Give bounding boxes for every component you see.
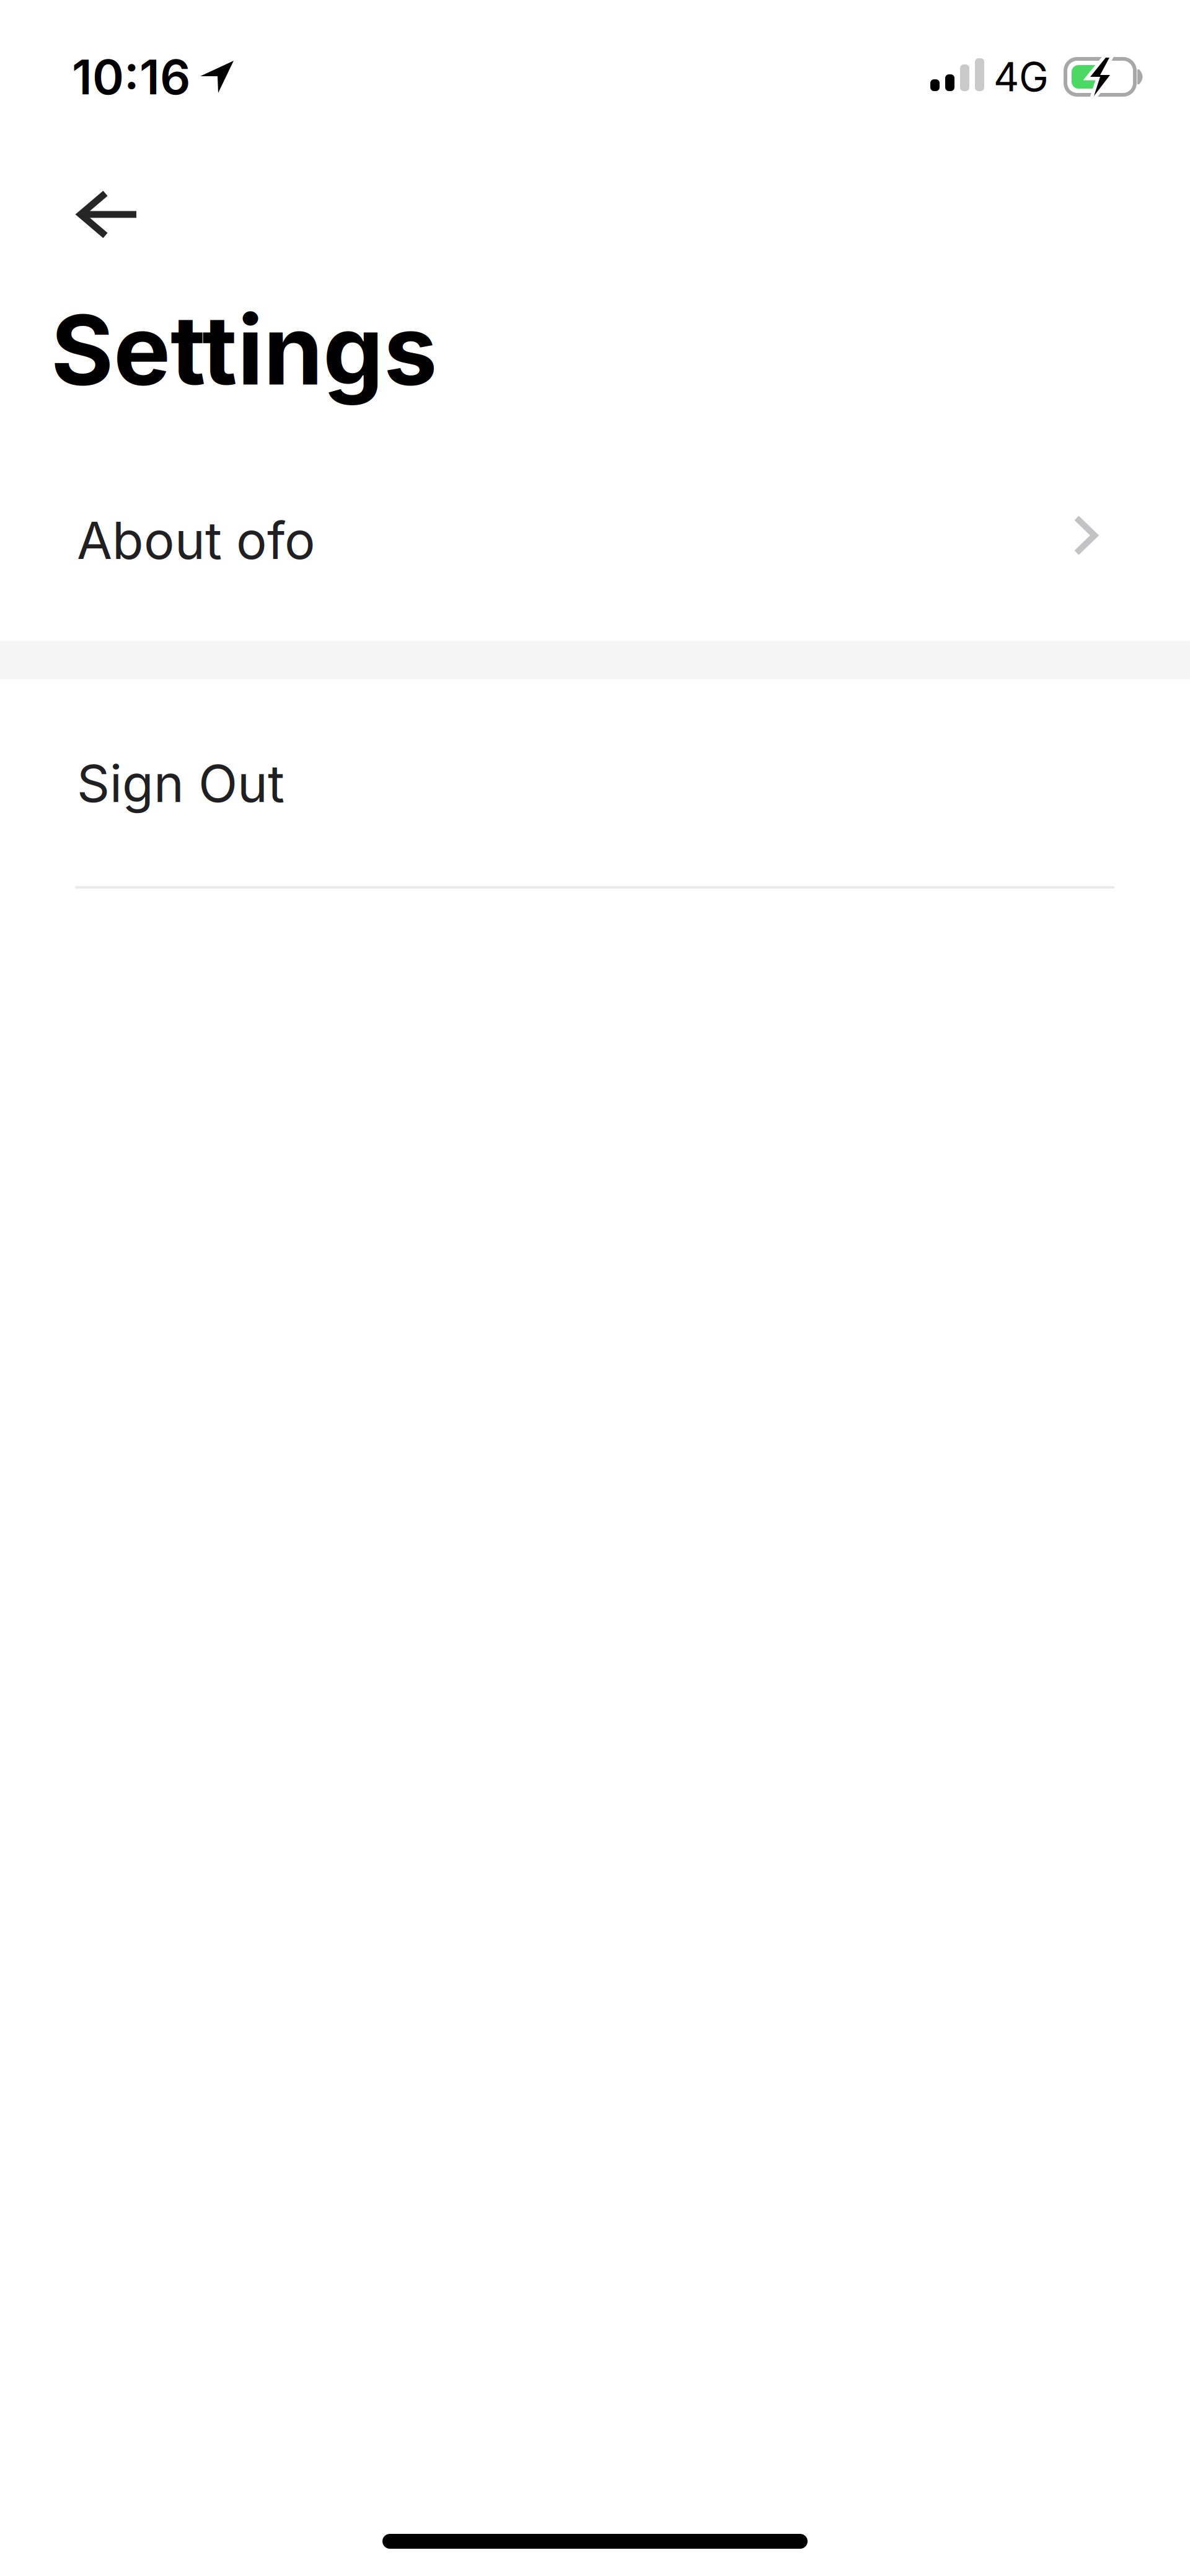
staticText: 4G bbox=[994, 53, 1049, 100]
button[interactable]: About ofo bbox=[0, 440, 1190, 641]
button[interactable]: Back bbox=[0, 154, 1190, 271]
staticText: Settings bbox=[51, 293, 438, 406]
staticText: Sign Out bbox=[77, 753, 284, 814]
staticText: About ofo bbox=[77, 510, 315, 571]
button[interactable]: Sign Out bbox=[0, 679, 1190, 889]
staticText: 10:16 bbox=[72, 49, 190, 105]
